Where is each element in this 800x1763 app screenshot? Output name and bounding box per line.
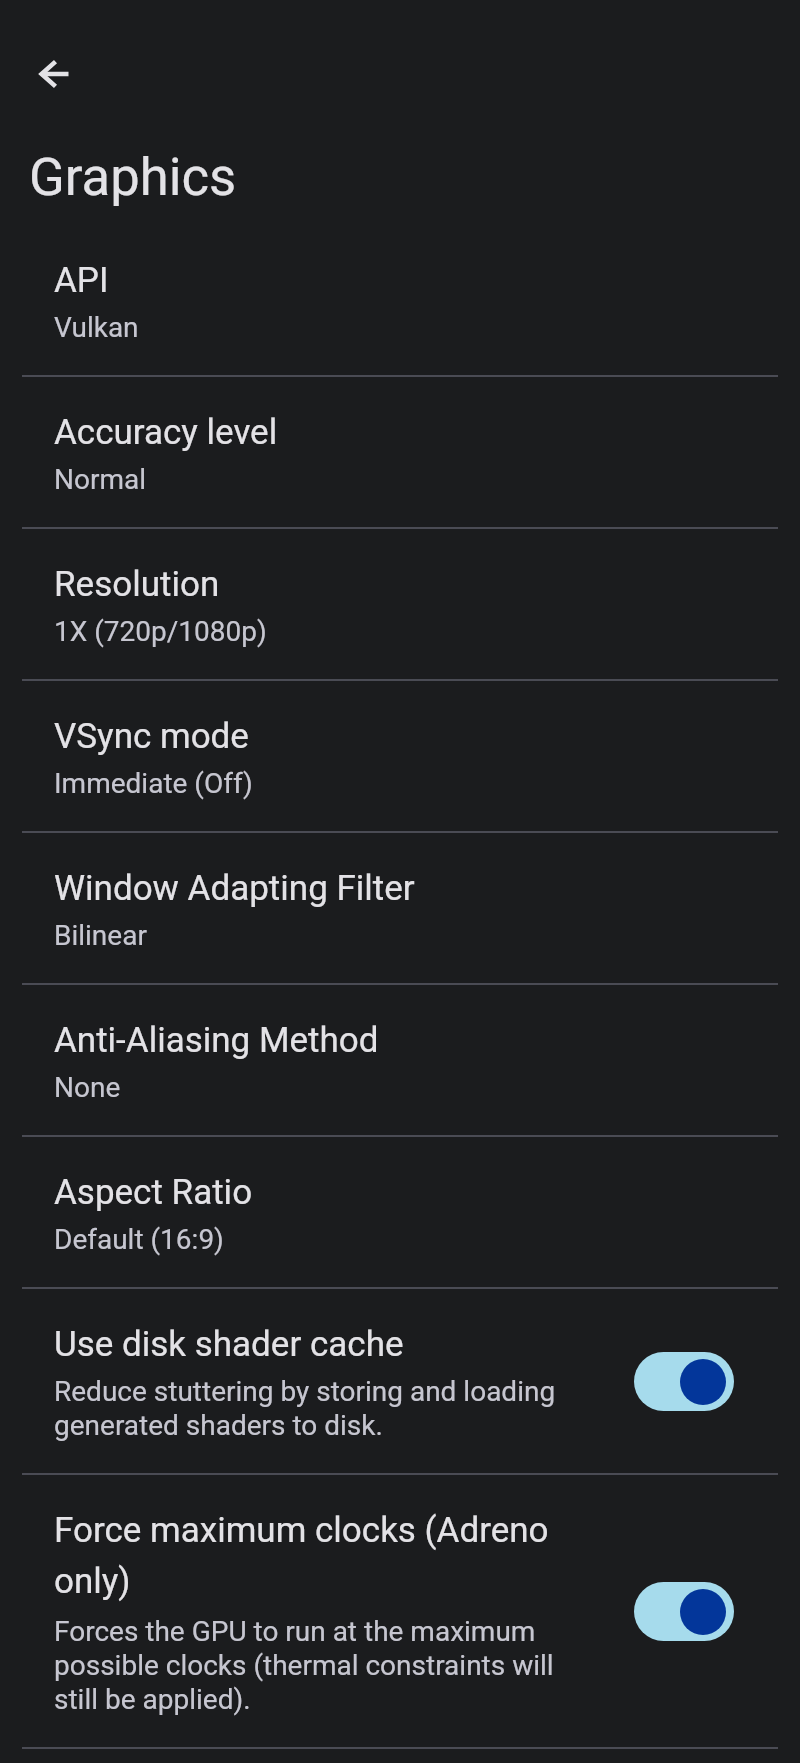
staticText: Forces the GPU to run at the maximum pos… [54,1615,554,1716]
button[interactable]: Toggle Force maximum clocks (Adreno only… [634,1582,734,1641]
button[interactable]: Resolution [0,529,800,679]
staticText: Aspect Ratio [54,1172,253,1213]
staticText: Resolution [54,564,220,605]
staticText: VSync mode [54,716,249,757]
staticText: API [54,260,109,301]
staticText: Anti-Aliasing Method [54,1020,379,1061]
staticText: Use disk shader cache [54,1324,404,1365]
staticText: Vulkan [54,311,139,344]
staticText: Window Adapting Filter [54,868,415,909]
button[interactable]: Use disk shader cache [0,1289,800,1473]
staticText: Default (16:9) [54,1223,224,1256]
staticText: Immediate (Off) [54,767,253,800]
button[interactable]: Aspect Ratio [0,1137,800,1287]
button[interactable]: Toggle Use disk shader cache [634,1352,734,1411]
staticText: Accuracy level [54,412,278,453]
staticText: None [54,1071,121,1104]
button[interactable]: Window Adapting Filter [0,833,800,983]
staticText: 1X (720p/1080p) [54,615,267,648]
staticText: Graphics [29,146,237,208]
button[interactable]: VSync mode [0,681,800,831]
button[interactable]: Anti-Aliasing Method [0,985,800,1135]
staticText: Force maximum clocks (Adreno only) [54,1510,549,1601]
button[interactable]: Back [22,38,94,110]
button[interactable]: Accuracy level [0,377,800,527]
button[interactable]: Force maximum clocks (Adreno only) [0,1475,800,1747]
staticText: Reduce stuttering by storing and loading… [54,1375,556,1442]
button[interactable]: API [0,225,800,375]
staticText: Normal [54,463,147,496]
staticText: Bilinear [54,919,147,952]
